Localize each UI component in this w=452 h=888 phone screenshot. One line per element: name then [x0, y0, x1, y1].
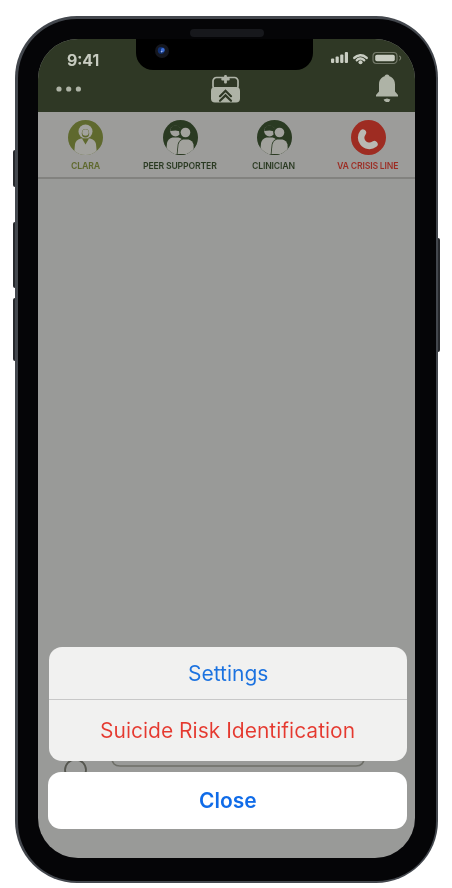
- button[interactable]: [210, 75, 241, 104]
- button[interactable]: Suicide Risk Identification: [49, 700, 407, 761]
- staticText: Close: [199, 788, 257, 813]
- button[interactable]: [52, 83, 86, 95]
- button[interactable]: VA CRISIS LINE: [321, 112, 415, 178]
- staticText: CLINICIAN: [252, 161, 296, 172]
- button[interactable]: CLINICIAN: [227, 112, 321, 178]
- button[interactable]: [374, 73, 400, 102]
- staticText: CLARA: [71, 161, 101, 172]
- staticText: PEER SUPPORTER: [143, 161, 217, 172]
- staticText: VA CRISIS LINE: [337, 161, 399, 172]
- staticText: Settings: [188, 661, 269, 686]
- button[interactable]: Close: [48, 772, 407, 829]
- button[interactable]: Settings: [49, 647, 407, 699]
- staticText: Suicide Risk Identification: [100, 718, 356, 743]
- button[interactable]: PEER SUPPORTER: [133, 112, 227, 178]
- staticText: 9:41: [67, 50, 100, 69]
- button[interactable]: CLARA: [38, 112, 133, 178]
